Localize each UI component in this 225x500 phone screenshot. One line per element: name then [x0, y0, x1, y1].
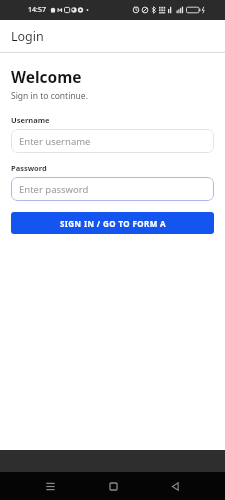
- staticText: Login: [11, 28, 44, 45]
- button[interactable]: Enter username: [11, 129, 214, 153]
- staticText: Welcome: [11, 66, 82, 87]
- button[interactable]: SIGN IN / GO TO FORM A: [11, 212, 214, 234]
- button[interactable]: Recent apps: [37, 473, 63, 499]
- staticText: Username: [11, 115, 50, 125]
- button[interactable]: Enter password: [11, 177, 214, 201]
- staticText: 14:57: [28, 5, 46, 15]
- staticText: SIGN IN / GO TO FORM A: [60, 218, 166, 229]
- staticText: Password: [11, 163, 47, 173]
- staticText: Sign in to continue.: [11, 90, 88, 102]
- button[interactable]: Back: [162, 473, 188, 499]
- staticText: Enter username: [19, 135, 91, 148]
- staticText: Enter password: [19, 183, 89, 196]
- button[interactable]: Home: [100, 473, 126, 499]
